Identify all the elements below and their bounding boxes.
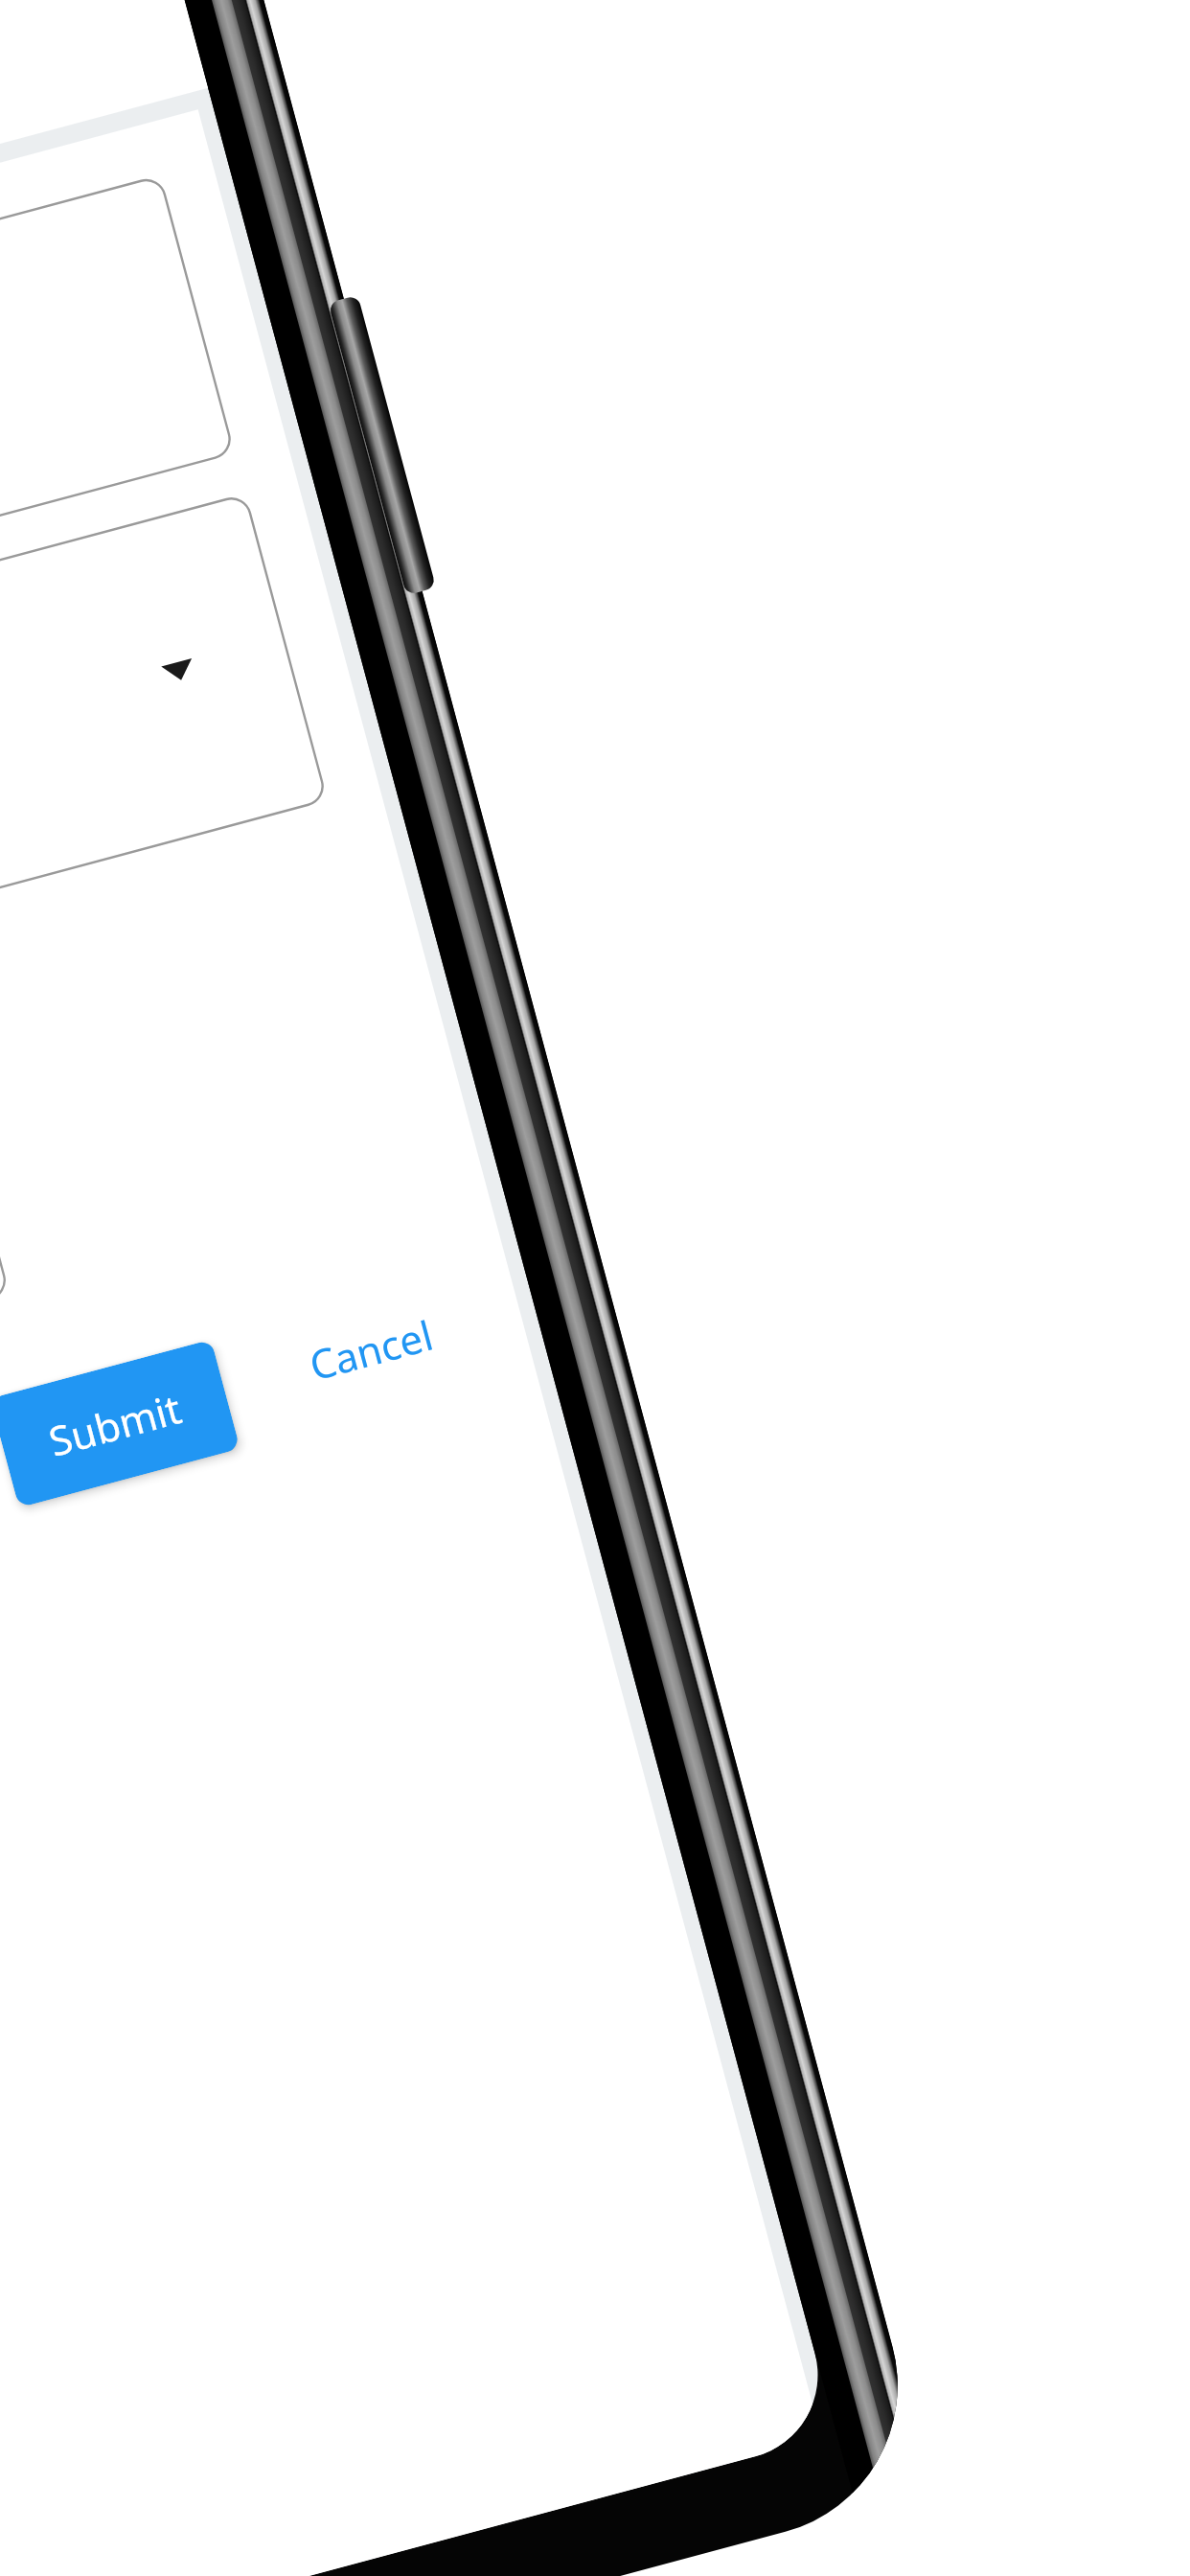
button[interactable]: Message field xyxy=(0,987,11,1575)
button[interactable]: Submit xyxy=(0,1339,240,1508)
button[interactable]: Category drop-down xyxy=(0,493,329,1098)
button[interactable]: Name field xyxy=(0,174,236,751)
staticText: Submit xyxy=(43,1380,187,1468)
button[interactable]: Cancel xyxy=(297,1299,444,1399)
staticText: Cancel xyxy=(303,1307,439,1392)
